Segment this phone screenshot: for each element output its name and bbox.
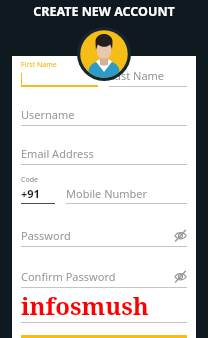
- staticText: Password: [21, 228, 174, 243]
- staticText: Mobile Number: [66, 186, 148, 201]
- staticText: Username: [21, 107, 75, 122]
- button[interactable]: Confirm Password: [21, 269, 187, 288]
- staticText: Email Address: [21, 146, 94, 161]
- staticText: infosmush: [21, 289, 149, 322]
- other: Show confirm password: [174, 270, 187, 283]
- button[interactable]: Last Name: [109, 68, 187, 87]
- button[interactable]: First Name: [21, 60, 98, 87]
- staticText: First Name: [21, 60, 57, 70]
- staticText: CREATE NEW ACCOUNT: [0, 3, 208, 20]
- other: Show password: [174, 229, 187, 242]
- button[interactable]: Code: [21, 175, 55, 204]
- button[interactable]: Email Address: [21, 146, 187, 165]
- staticText: Last Name: [109, 68, 165, 83]
- staticText: +91: [21, 186, 40, 201]
- button[interactable]: Password: [21, 228, 187, 247]
- button[interactable]: Mobile Number: [66, 186, 187, 204]
- button[interactable]: Username: [21, 107, 187, 126]
- staticText: Code: [21, 175, 38, 185]
- staticText: Confirm Password: [21, 269, 174, 284]
